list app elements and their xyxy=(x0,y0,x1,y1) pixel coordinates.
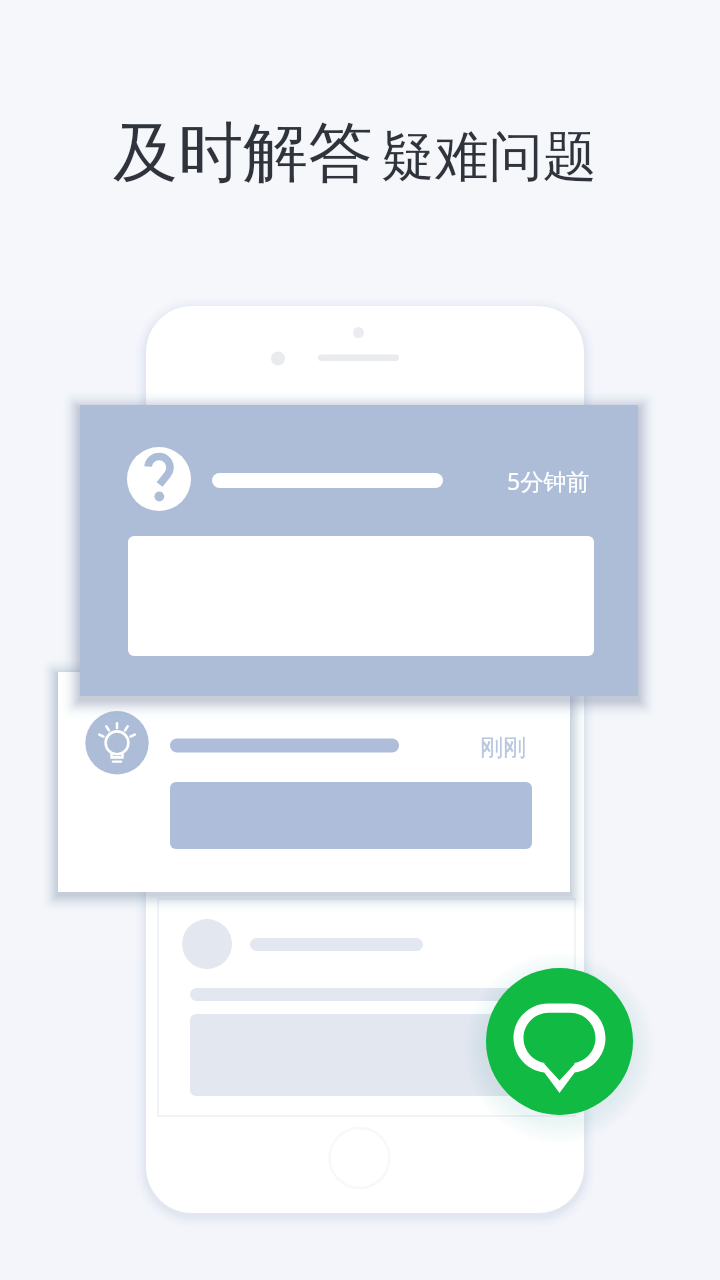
staticText: 及时解答 疑难问题 xyxy=(113,112,597,194)
staticText: 5分钟前 xyxy=(507,465,590,496)
button[interactable]: 刚刚 xyxy=(58,672,570,892)
staticText: 刚刚 xyxy=(480,733,526,762)
button[interactable]: 及时解答 疑难问题 xyxy=(113,112,597,194)
button[interactable]: New question xyxy=(486,968,633,1115)
button[interactable]: 5分钟前 xyxy=(80,405,638,696)
